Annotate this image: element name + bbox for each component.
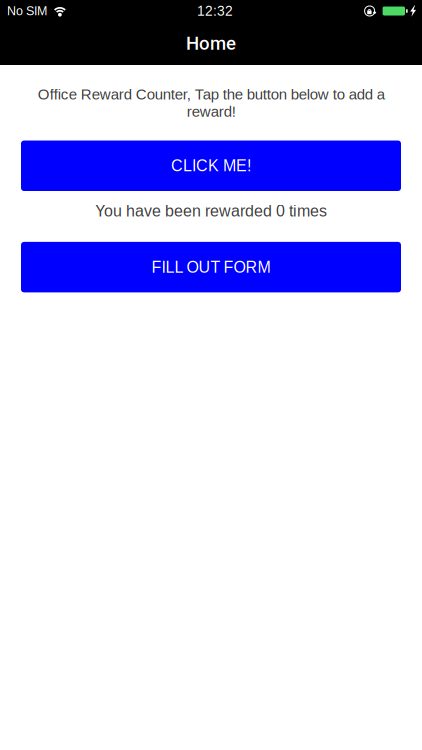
staticText: Office Reward Counter, Tap the button be… [37,86,384,120]
staticText: CLICK ME! [171,157,251,175]
button[interactable]: FILL OUT FORM [21,242,401,292]
staticText: Home [186,33,236,54]
button[interactable]: CLICK ME! [21,140,401,191]
staticText: No SIM [7,4,47,18]
staticText: FILL OUT FORM [151,258,270,276]
staticText: 12:32 [197,3,233,19]
staticText: You have been rewarded 0 times [95,202,327,220]
